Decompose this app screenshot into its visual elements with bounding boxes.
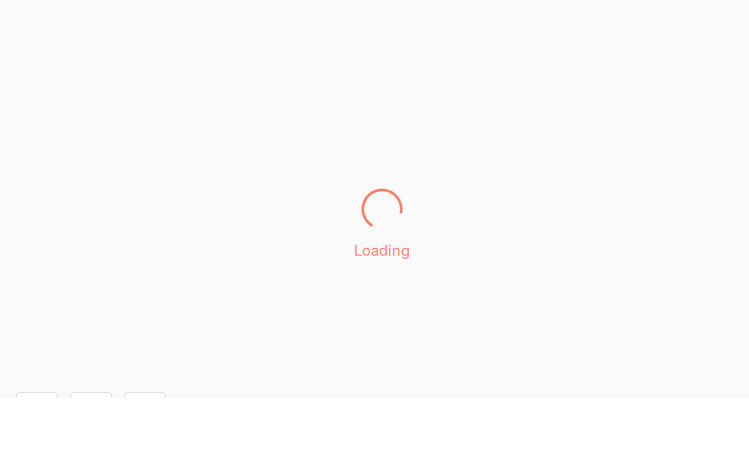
button[interactable]: Action <box>124 392 166 418</box>
button[interactable]: Action <box>70 392 112 418</box>
button[interactable]: Action <box>16 392 58 418</box>
staticText: Loading <box>354 242 410 259</box>
